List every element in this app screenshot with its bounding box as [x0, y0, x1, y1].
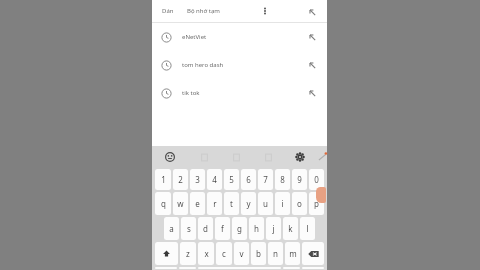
staticText: 5 [229, 174, 234, 185]
staticText: i [281, 198, 284, 209]
staticText: c [222, 248, 226, 259]
button[interactable]: k [283, 217, 298, 240]
staticText: m [289, 248, 297, 259]
staticText: h [254, 223, 259, 234]
button[interactable]: Insert eNetViet [303, 28, 321, 46]
staticText: l [306, 223, 309, 234]
staticText: 8 [280, 174, 285, 185]
staticText: 3 [195, 174, 200, 185]
staticText: z [186, 248, 190, 259]
staticText: k [288, 223, 293, 234]
staticText: 2 [178, 174, 183, 185]
staticText: w [177, 198, 184, 209]
staticText: j [272, 223, 275, 234]
button[interactable]: n [268, 242, 283, 265]
button[interactable]: 4 [207, 169, 222, 190]
button[interactable]: Dán [160, 5, 176, 17]
button[interactable]: 3 [190, 169, 205, 190]
staticText: f [221, 223, 224, 234]
button[interactable]: Tool 3 [260, 149, 276, 165]
staticText: tom hero dash [182, 61, 224, 69]
button[interactable]: y [241, 192, 256, 215]
button[interactable]: 5 [224, 169, 239, 190]
staticText: n [273, 248, 278, 259]
button[interactable]: f [215, 217, 230, 240]
button[interactable]: tik tok [152, 79, 327, 107]
staticText: o [297, 198, 302, 209]
button[interactable]: c [216, 242, 232, 265]
button[interactable]: o [292, 192, 307, 215]
button[interactable]: 1 [155, 169, 171, 190]
button[interactable]: e [190, 192, 205, 215]
staticText: Dán [162, 7, 174, 15]
button[interactable]: Insert tom hero dash [303, 56, 321, 74]
button[interactable]: l [300, 217, 315, 240]
staticText: e [195, 198, 200, 209]
button[interactable]: 2 [173, 169, 188, 190]
staticText: 1 [161, 174, 166, 185]
button[interactable]: Tool 2 [228, 149, 244, 165]
staticText: b [256, 248, 261, 259]
button[interactable]: tom hero dash [152, 51, 327, 79]
button[interactable]: Settings [292, 149, 308, 165]
button[interactable]: 8 [275, 169, 290, 190]
button[interactable]: d [198, 217, 213, 240]
button[interactable]: Emoji [162, 149, 178, 165]
staticText: v [239, 248, 244, 259]
staticText: r [213, 198, 217, 209]
staticText: 4 [212, 174, 217, 185]
button[interactable]: Bộ nhớ tạm [185, 5, 222, 17]
staticText: Bộ nhớ tạm [187, 7, 220, 15]
staticText: 6 [246, 174, 251, 185]
button[interactable]: Shift [155, 242, 178, 265]
staticText: 7 [263, 174, 268, 185]
staticText: a [169, 223, 174, 234]
button[interactable]: Backspace [302, 242, 324, 265]
button[interactable]: Tool 1 [196, 149, 212, 165]
button[interactable]: h [249, 217, 264, 240]
staticText: x [204, 248, 209, 259]
button[interactable]: Insert [303, 3, 321, 21]
button[interactable]: b [251, 242, 266, 265]
button[interactable]: Insert tik tok [303, 84, 321, 102]
button[interactable]: t [224, 192, 239, 215]
button[interactable]: p [309, 192, 324, 215]
button[interactable]: q [155, 192, 171, 215]
button[interactable]: s [181, 217, 196, 240]
button[interactable]: x [198, 242, 214, 265]
button[interactable]: 0 [309, 169, 324, 190]
staticText: 0 [314, 174, 319, 185]
staticText: d [203, 223, 208, 234]
staticText: s [187, 223, 191, 234]
button[interactable]: m [285, 242, 300, 265]
staticText: q [161, 198, 166, 209]
staticText: t [230, 198, 233, 209]
button[interactable]: u [258, 192, 273, 215]
button[interactable]: j [266, 217, 281, 240]
button[interactable]: 9 [292, 169, 307, 190]
button[interactable]: r [207, 192, 222, 215]
button[interactable]: More options [255, 1, 275, 21]
staticText: u [263, 198, 268, 209]
button[interactable]: z [180, 242, 196, 265]
button[interactable]: w [173, 192, 188, 215]
button[interactable]: v [234, 242, 249, 265]
staticText: 9 [297, 174, 302, 185]
button[interactable]: g [232, 217, 247, 240]
button[interactable]: a [164, 217, 179, 240]
button[interactable]: 6 [241, 169, 256, 190]
button[interactable]: eNetViet [152, 23, 327, 51]
staticText: g [237, 223, 242, 234]
staticText: y [246, 198, 251, 209]
button[interactable]: More [318, 149, 327, 165]
button[interactable]: i [275, 192, 290, 215]
button[interactable]: 7 [258, 169, 273, 190]
staticText: p [314, 198, 319, 209]
